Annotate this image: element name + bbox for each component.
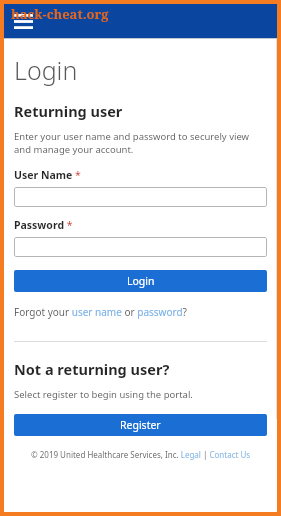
button[interactable]: Text input — [14, 187, 267, 207]
staticText: Enter your user name and password to sec… — [14, 130, 267, 156]
button[interactable]: Register — [14, 414, 267, 436]
staticText: Returning user — [14, 101, 123, 121]
staticText: Login — [127, 274, 155, 288]
staticText: User Name * — [14, 168, 81, 182]
staticText: Login — [14, 53, 78, 87]
staticText: hack-cheat.org — [11, 5, 109, 23]
button[interactable]: Forgot your user name or password? — [14, 305, 187, 319]
staticText: Not a returning user? — [14, 359, 170, 379]
staticText: Select register to begin using the porta… — [14, 388, 193, 401]
staticText: Register — [120, 418, 161, 432]
staticText: © 2019 United Healthcare Services, Inc. … — [31, 449, 251, 460]
button[interactable]: Text input — [14, 237, 267, 257]
button[interactable]: Open navigation menu — [10, 8, 36, 34]
staticText: Password * — [14, 218, 73, 232]
button[interactable]: Login — [14, 270, 267, 292]
